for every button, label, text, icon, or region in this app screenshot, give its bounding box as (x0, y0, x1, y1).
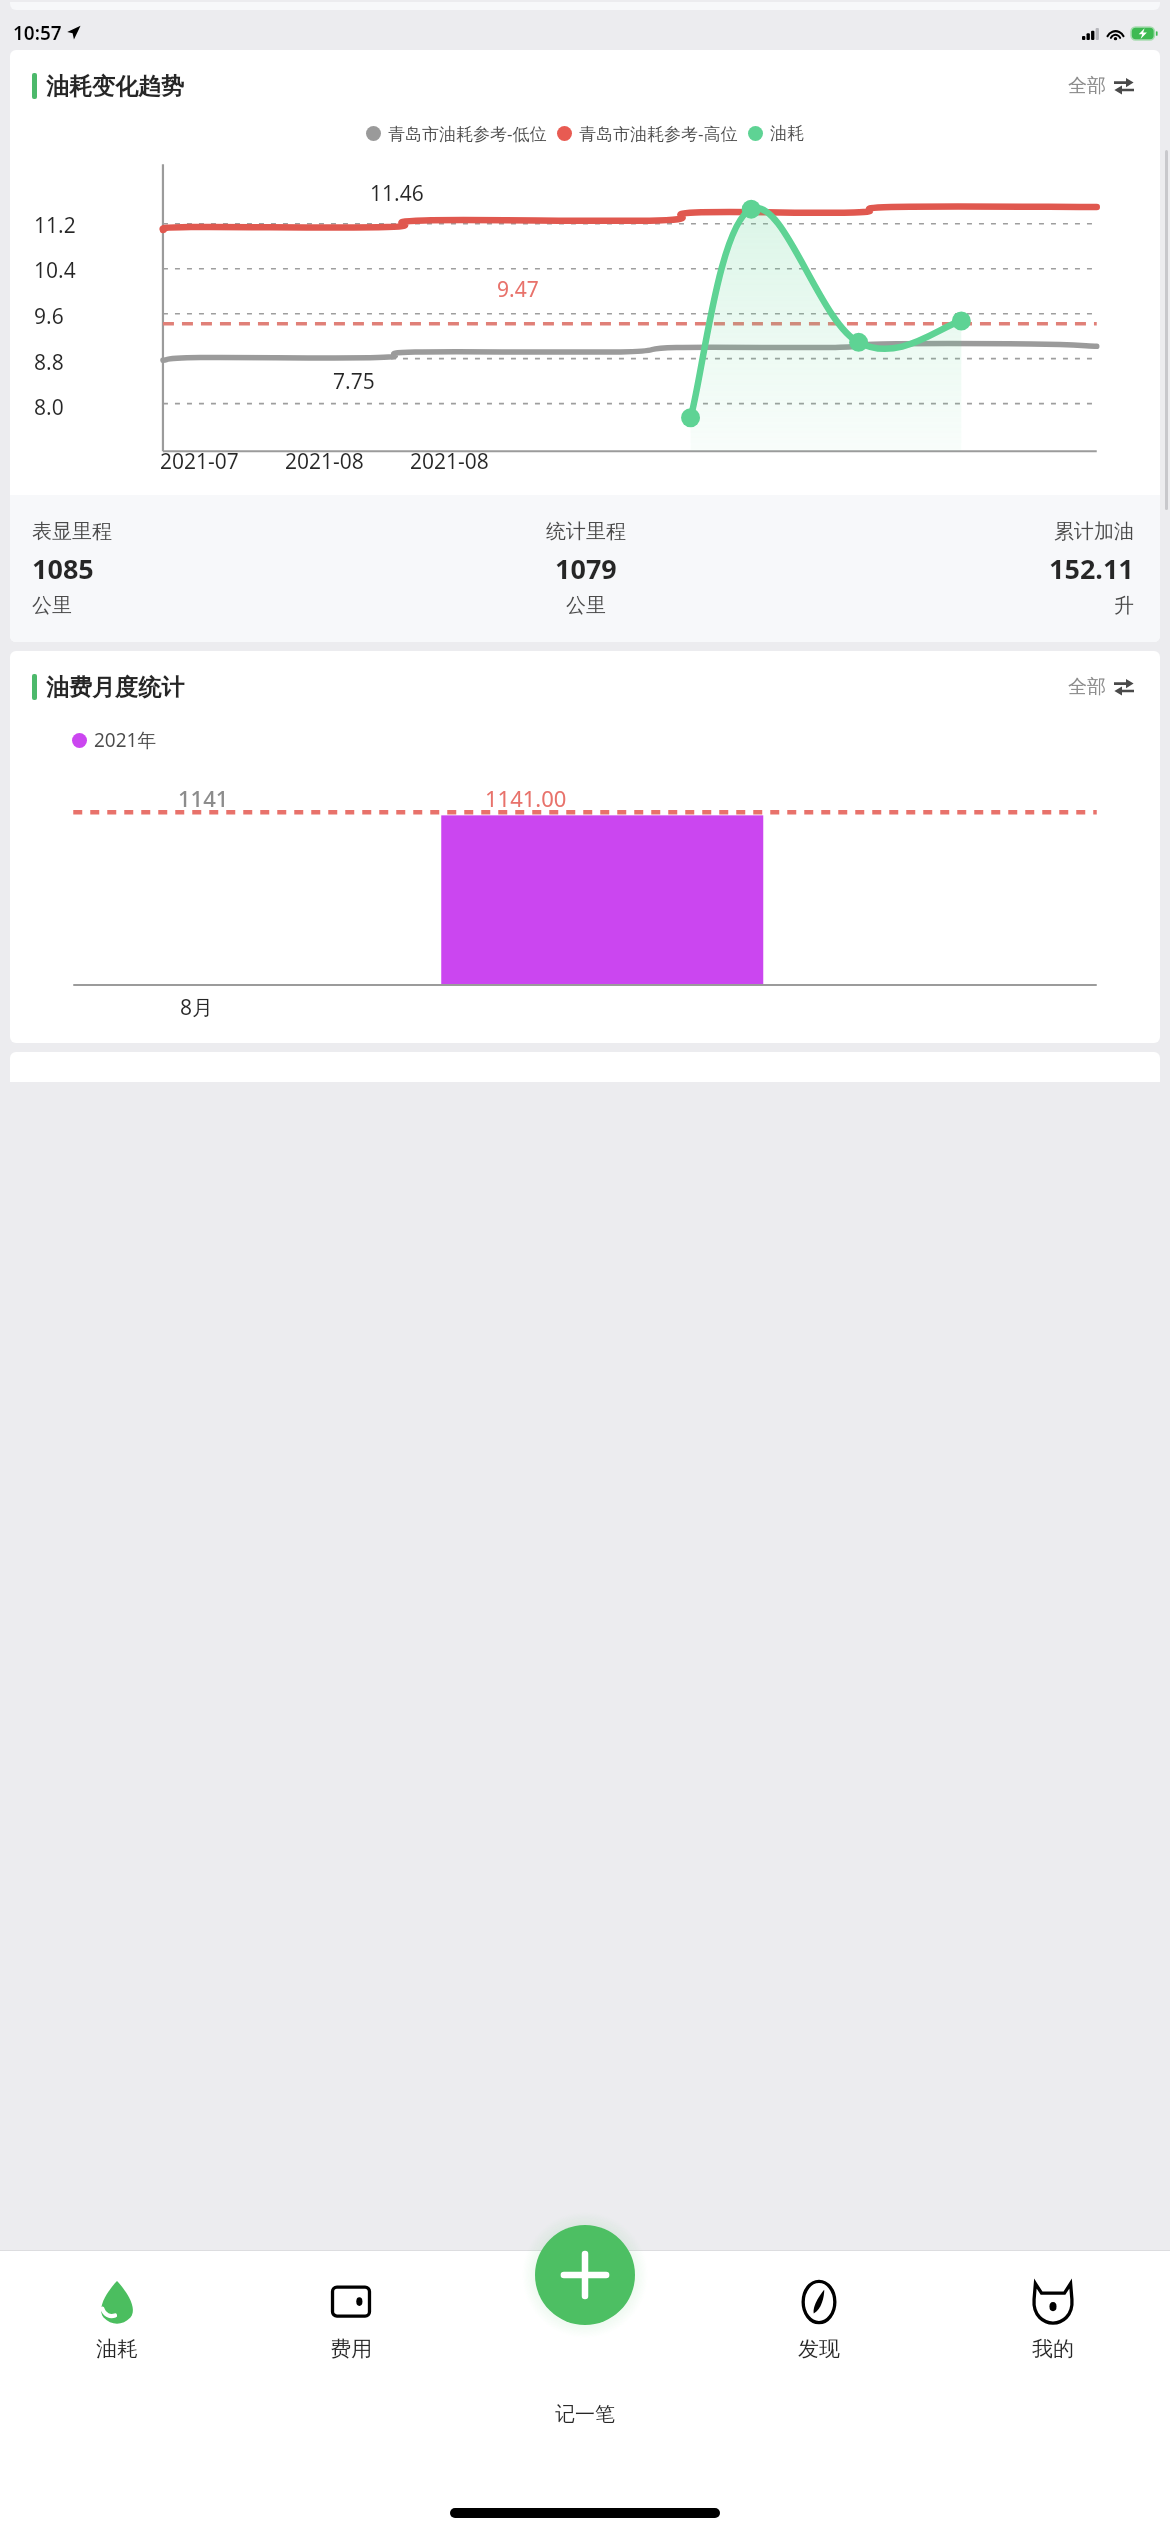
staticText: 9.6 (34, 302, 64, 331)
staticText: 全部 (1068, 74, 1106, 98)
button[interactable]: 全部 (1062, 669, 1140, 705)
staticText: 2021-08 (410, 447, 489, 476)
staticText: 1141.00 (485, 783, 567, 813)
button[interactable]: 我的 (936, 2251, 1170, 2391)
staticText: 统计里程 (546, 519, 626, 544)
staticText: 公里 (566, 593, 606, 618)
staticText: 公里 (32, 593, 72, 618)
staticText: 发现 (798, 2336, 840, 2362)
staticText: 10.4 (34, 256, 76, 285)
staticText: 8.0 (34, 393, 64, 422)
staticText: 升 (1114, 593, 1134, 618)
staticText: 我的 (1032, 2336, 1074, 2362)
staticText: 2021年 (94, 727, 157, 753)
staticText: 2021-08 (285, 447, 364, 476)
staticText: 2021-07 (160, 447, 239, 476)
button[interactable]: 油耗变化趋势 (10, 50, 1160, 642)
staticText: 10:57 (13, 20, 62, 46)
staticText: 油耗变化趋势 (46, 72, 184, 101)
button[interactable]: 全部 (1062, 68, 1140, 104)
button[interactable]: 费用 (234, 2251, 468, 2391)
staticText: 11.46 (370, 179, 424, 208)
button[interactable]: 油耗 (0, 2251, 234, 2391)
staticText: 记一笔 (555, 2402, 615, 2427)
staticText: 8月 (180, 993, 214, 1022)
staticText: 1141 (178, 783, 229, 813)
staticText: 累计加油 (1054, 519, 1134, 544)
staticText: 9.47 (497, 275, 539, 304)
staticText: 油耗 (96, 2336, 138, 2362)
staticText: 费用 (330, 2336, 372, 2362)
staticText: 全部 (1068, 675, 1106, 699)
staticText: 11.2 (34, 211, 76, 240)
button[interactable]: 油费月度统计 (10, 651, 1160, 1043)
staticText: 表显里程 (32, 519, 112, 544)
button[interactable]: 发现 (702, 2251, 936, 2391)
staticText: 油耗 (770, 123, 804, 144)
staticText: 152.11 (1049, 550, 1134, 587)
staticText: 青岛市油耗参考-低位 (388, 122, 547, 145)
staticText: 1079 (555, 550, 617, 587)
button[interactable]: 记一笔 添加 (535, 2225, 635, 2325)
staticText: 青岛市油耗参考-高位 (579, 122, 738, 145)
staticText: 8.8 (34, 348, 64, 377)
staticText: 油费月度统计 (46, 673, 184, 702)
staticText: 1085 (32, 550, 94, 587)
staticText: 7.75 (333, 367, 375, 396)
